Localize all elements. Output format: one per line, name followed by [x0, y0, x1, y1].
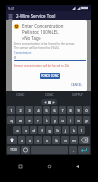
button[interactable]: CANCEL	[70, 82, 83, 88]
staticText: 5	[45, 108, 48, 113]
button[interactable]: 6	[51, 106, 58, 114]
staticText: .	[73, 148, 74, 153]
button[interactable]: z	[18, 136, 25, 144]
button[interactable]: 1	[7, 106, 15, 114]
staticText: Sensor concentration will be forced to 2…	[14, 64, 70, 68]
button[interactable]: j	[62, 126, 69, 134]
button[interactable]: CONC	[35, 91, 63, 98]
button[interactable]: Backspace	[79, 136, 90, 144]
staticText: k	[73, 128, 75, 133]
staticText: v	[46, 138, 48, 143]
button[interactable]: Recents	[6, 162, 35, 171]
staticText: r	[37, 118, 39, 123]
staticText: 7	[61, 108, 64, 113]
staticText: a	[16, 128, 19, 133]
staticText: y	[54, 118, 56, 123]
button[interactable]: CONC	[6, 91, 35, 98]
button[interactable]: Clipboard toolbar	[41, 99, 57, 105]
button[interactable]: w	[16, 116, 24, 124]
staticText: j	[65, 128, 66, 133]
staticText: w	[19, 118, 22, 123]
staticText: 3	[28, 108, 31, 113]
staticText: CONC	[45, 93, 54, 97]
staticText: g	[48, 128, 51, 133]
button[interactable]: Emoji	[21, 146, 30, 154]
button[interactable]: l	[78, 126, 85, 134]
button[interactable]: ?123	[7, 146, 20, 154]
button[interactable]: .	[69, 146, 77, 154]
button[interactable]: r	[34, 116, 42, 124]
button[interactable]: Enter	[78, 146, 90, 154]
staticText: Pellistor, 100%LEL	[22, 29, 59, 35]
staticText: 0	[14, 55, 17, 60]
staticText: f	[41, 128, 43, 133]
button[interactable]: 0	[83, 106, 90, 114]
staticText: SUPPLY	[72, 93, 83, 97]
staticText: 6	[53, 108, 56, 113]
button[interactable]: i	[67, 116, 74, 124]
button[interactable]: e	[25, 116, 33, 124]
button[interactable]: SUPPLY	[63, 91, 91, 98]
button[interactable]: Back	[63, 162, 91, 171]
staticText: x	[29, 138, 31, 143]
button[interactable]: y	[51, 116, 58, 124]
button[interactable]: k	[70, 126, 77, 134]
button[interactable]: Shift	[7, 136, 17, 144]
staticText: The sensor will be forced to 0%LEL	[14, 46, 60, 50]
button[interactable]: m	[70, 136, 78, 144]
staticText: h	[56, 128, 59, 133]
staticText: Enter concentration to be forced to the …	[14, 42, 75, 46]
button[interactable]: u	[59, 116, 66, 124]
button[interactable]: 7	[59, 106, 66, 114]
button[interactable]: Navigation menu	[6, 11, 91, 20]
other: Navigation menu	[8, 13, 13, 18]
button[interactable]: b	[52, 136, 60, 144]
button[interactable]: 3	[25, 106, 33, 114]
button[interactable]: x	[26, 136, 33, 144]
staticText: 1	[10, 108, 13, 113]
staticText: CONC	[16, 93, 25, 97]
button[interactable]: h	[54, 126, 61, 134]
button[interactable]: 4	[34, 106, 42, 114]
button[interactable]: 2	[16, 106, 24, 114]
button[interactable]: 5	[43, 106, 50, 114]
button[interactable]: c	[34, 136, 42, 144]
staticText: d	[32, 128, 35, 133]
button[interactable]: n	[61, 136, 69, 144]
button[interactable]: t	[43, 116, 50, 124]
button[interactable]: o	[75, 116, 82, 124]
button[interactable]: d	[30, 126, 37, 134]
staticText: t	[46, 118, 48, 123]
button[interactable]: 9	[75, 106, 82, 114]
button[interactable]: 8	[67, 106, 74, 114]
staticText: 2-Wire Service Tool	[16, 13, 56, 19]
staticText: 4	[37, 108, 40, 113]
staticText: CANCEL	[71, 83, 82, 87]
staticText: m	[72, 138, 76, 143]
button[interactable]: f	[38, 126, 45, 134]
staticText: p	[85, 118, 88, 123]
staticText: Enter Concentration	[22, 23, 64, 29]
staticText: «No Tag»	[22, 35, 41, 41]
button[interactable]: Home	[35, 162, 63, 171]
staticText: n	[64, 138, 67, 143]
staticText: Concentration	[14, 51, 32, 55]
staticText: b	[55, 138, 58, 143]
staticText: 2	[19, 108, 22, 113]
staticText: 9:41	[8, 6, 15, 11]
button[interactable]: FORCE CONC	[40, 73, 60, 79]
button[interactable]: a	[13, 126, 21, 134]
button[interactable]: q	[7, 116, 15, 124]
button[interactable]: s	[22, 126, 29, 134]
staticText: c	[37, 138, 39, 143]
button[interactable]: v	[43, 136, 51, 144]
staticText: s	[25, 128, 27, 133]
staticText: FORCE CONC	[41, 74, 59, 78]
staticText: 0	[85, 108, 88, 113]
staticText: u	[61, 118, 64, 123]
button[interactable]: g	[46, 126, 53, 134]
button[interactable]: p	[83, 116, 90, 124]
staticText: o	[77, 118, 80, 123]
staticText: 8	[69, 108, 72, 113]
